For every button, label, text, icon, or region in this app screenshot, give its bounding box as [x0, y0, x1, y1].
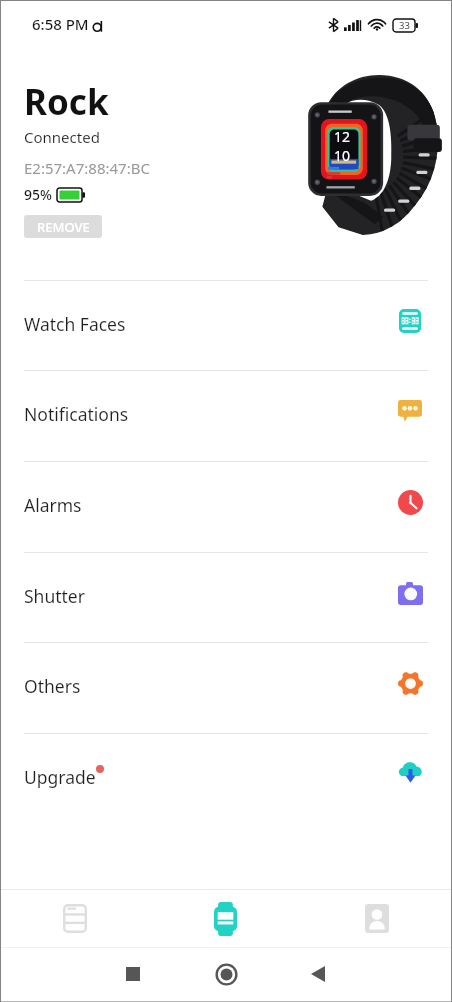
button[interactable]: Profile: [301, 890, 452, 947]
staticText: 33: [399, 19, 410, 32]
staticText: REMOVE: [37, 218, 90, 236]
button[interactable]: Watch Faces: [0, 281, 452, 370]
button[interactable]: Others: [0, 643, 452, 733]
button[interactable]: REMOVE: [24, 215, 102, 238]
button[interactable]: Upgrade: [0, 734, 452, 823]
staticText: Connected: [24, 127, 100, 147]
button[interactable]: Devices: [0, 890, 150, 947]
button[interactable]: Home: [204, 952, 248, 996]
staticText: 6:58 PM: [32, 14, 89, 34]
button[interactable]: Watch: [150, 890, 301, 947]
button[interactable]: Recents: [111, 952, 155, 996]
staticText: Notifications: [24, 402, 129, 426]
button[interactable]: Back: [296, 952, 340, 996]
button[interactable]: Alarms: [0, 462, 452, 552]
staticText: Rock: [24, 78, 109, 126]
staticText: Upgrade: [24, 765, 96, 789]
staticText: 12: [334, 127, 351, 146]
staticText: 95%: [24, 185, 52, 204]
button[interactable]: Notifications: [0, 371, 452, 461]
staticText: Shutter: [24, 584, 85, 608]
staticText: 10: [334, 146, 351, 165]
staticText: Alarms: [24, 493, 82, 517]
staticText: E2:57:A7:88:47:BC: [24, 158, 150, 178]
staticText: Watch Faces: [24, 312, 126, 336]
button[interactable]: Shutter: [0, 553, 452, 642]
staticText: Others: [24, 674, 81, 698]
